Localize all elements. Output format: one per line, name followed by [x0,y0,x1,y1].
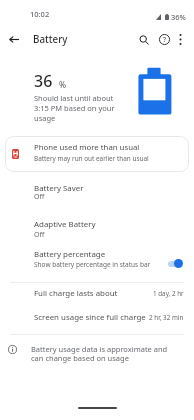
button[interactable]: Help [153,24,175,55]
staticText: Off [34,230,45,240]
staticText: Full charge lasts about [34,288,118,299]
staticText: 10:02 [30,9,50,19]
button[interactable]: Full charge lasts about [0,282,194,304]
staticText: 2 hr, 32 min [149,313,184,322]
staticText: 1 day, 2 hr [153,289,184,298]
button[interactable]: Battery percentage [0,242,194,274]
staticText: Battery may run out earlier than usual [34,154,149,163]
staticText: Should last until about 3:15 PM based on… [34,93,118,123]
button[interactable]: Phone used more than usual [5,136,189,172]
staticText: Battery Saver [34,183,84,194]
button[interactable]: More options [170,24,190,55]
button[interactable]: Adaptive Battery [0,212,194,244]
staticText: Screen usage since full charge [34,312,146,323]
button[interactable]: Back [2,24,26,55]
staticText: Battery usage data is approximate and ca… [31,344,171,363]
staticText: Battery percentage [34,249,106,260]
staticText: 36 [34,70,53,92]
button[interactable]: Battery Saver [0,176,194,208]
button[interactable]: Search [133,24,155,55]
staticText: Battery [33,33,68,46]
staticText: Show battery percentage in status bar [34,260,151,269]
staticText: 36% [171,12,186,22]
button[interactable]: Screen usage since full charge [0,306,194,328]
staticText: Phone used more than usual [34,142,140,153]
staticText: ? [163,35,166,44]
staticText: Adaptive Battery [34,219,96,230]
staticText: Off [34,192,45,202]
staticText: % [59,79,67,91]
